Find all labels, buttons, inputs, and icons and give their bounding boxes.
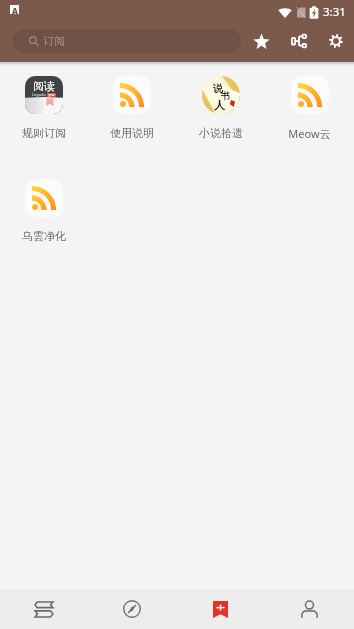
button[interactable]: 乌雲净化	[0, 172, 88, 274]
staticText: Legado	[32, 92, 46, 97]
button[interactable]: Groups	[282, 24, 316, 58]
button[interactable]: Explore	[88, 589, 176, 629]
button[interactable]: 订阅	[13, 29, 241, 53]
staticText: Meow云	[288, 126, 331, 141]
button[interactable]: Profile	[265, 589, 354, 629]
button[interactable]: Meow云	[265, 69, 354, 172]
staticText: 人	[214, 98, 225, 112]
staticText: 规则订阅	[22, 126, 66, 140]
staticText: 开源	[48, 93, 55, 97]
staticText: 说	[213, 82, 223, 95]
staticText: 小说拾遗	[199, 126, 243, 140]
staticText: A	[12, 5, 18, 14]
staticText: 3:31	[323, 4, 346, 20]
button[interactable]: Subscriptions	[176, 589, 265, 629]
button[interactable]: 说	[176, 69, 265, 171]
button[interactable]: 阅读	[0, 69, 88, 171]
button[interactable]: Favorites	[244, 24, 278, 58]
staticText: 使用说明	[110, 126, 154, 140]
button[interactable]: 使用说明	[88, 69, 176, 171]
staticText: 书	[221, 90, 230, 101]
staticText: 阅读	[33, 79, 55, 93]
staticText: 订阅	[43, 34, 65, 48]
button[interactable]: Bookshelf	[0, 589, 88, 629]
button[interactable]: Settings	[319, 24, 353, 58]
staticText: 乌雲净化	[22, 229, 66, 243]
